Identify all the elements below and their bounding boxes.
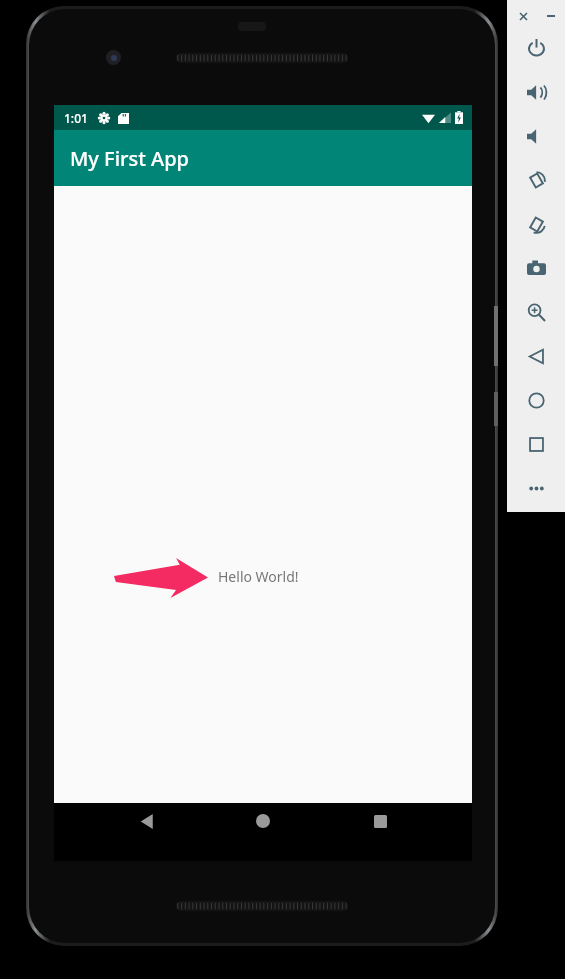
- button[interactable]: Recent apps: [356, 803, 404, 839]
- button[interactable]: Back: [123, 803, 171, 839]
- button[interactable]: More: [507, 466, 565, 510]
- button[interactable]: Overview: [507, 422, 565, 466]
- button[interactable]: Minimize: [543, 8, 559, 24]
- button[interactable]: My First App: [54, 130, 472, 186]
- button[interactable]: Zoom: [507, 290, 565, 334]
- button[interactable]: Home: [507, 378, 565, 422]
- button[interactable]: Rotate right: [507, 202, 565, 246]
- staticText: My First App: [70, 145, 190, 172]
- button[interactable]: Power: [507, 26, 565, 70]
- button[interactable]: Rotate left: [507, 158, 565, 202]
- button[interactable]: Take screenshot: [507, 246, 565, 290]
- button[interactable]: Volume up: [507, 70, 565, 114]
- button[interactable]: Volume down: [507, 114, 565, 158]
- button[interactable]: Back: [507, 334, 565, 378]
- button[interactable]: Home: [239, 803, 287, 839]
- staticText: 1:01: [64, 110, 88, 126]
- staticText: Hello World!: [218, 567, 299, 586]
- button[interactable]: Close: [515, 8, 531, 24]
